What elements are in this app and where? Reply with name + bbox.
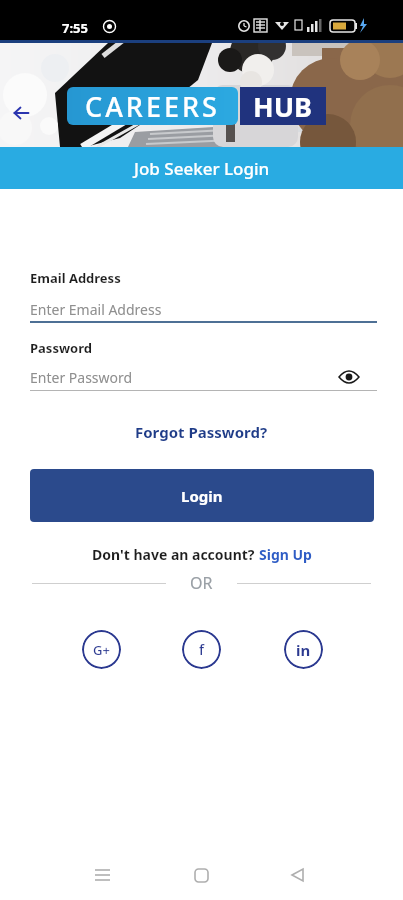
button[interactable]: f [182,630,221,669]
staticText: Login [181,486,223,506]
staticText: G+ [93,641,110,659]
button[interactable] [338,369,360,385]
staticText: Job Seeker Login [134,157,270,180]
staticText: f [199,640,204,659]
staticText: Enter Email Address [30,300,162,319]
button[interactable]: Login [30,469,374,522]
button[interactable] [88,860,118,890]
button[interactable]: in [284,630,323,669]
button[interactable] [13,106,30,120]
button[interactable]: Don't have an account? [92,545,312,564]
button[interactable] [186,860,216,890]
staticText: Password [30,339,92,357]
staticText: 7:55 [62,19,88,37]
staticText: Don't have an account? [92,545,259,564]
button[interactable]: Enter Email Address [30,296,377,324]
staticText: OR [190,572,213,594]
staticText: CAREERS [85,88,220,125]
staticText: Email Address [30,269,121,287]
button[interactable]: Enter Password [30,364,377,390]
staticText: in [296,640,311,660]
button[interactable]: Forgot Password? [135,422,268,442]
button[interactable] [282,860,312,890]
staticText: Enter Password [30,368,133,387]
staticText: HUB [253,88,313,125]
button[interactable]: G+ [82,630,121,669]
staticText: Sign Up [259,545,312,564]
